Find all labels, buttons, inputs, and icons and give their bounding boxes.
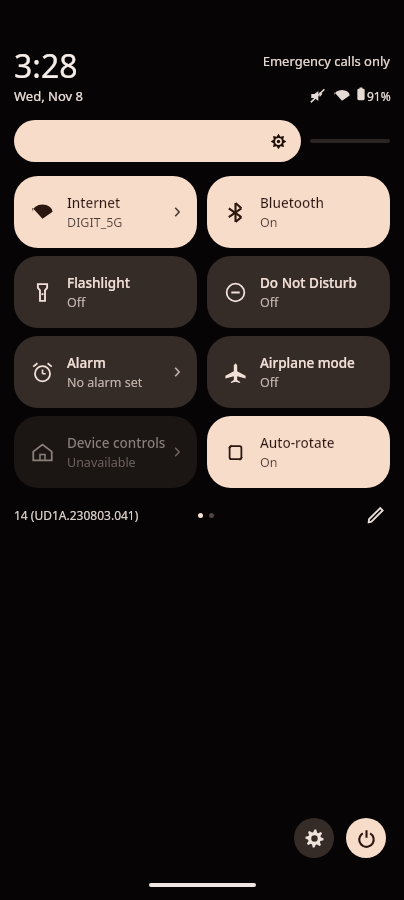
staticText: Airplane mode — [260, 354, 355, 372]
staticText: Internet — [67, 194, 121, 212]
staticText: Off — [260, 294, 279, 311]
button[interactable]: Brightness — [14, 120, 301, 162]
staticText: Auto-rotate — [260, 434, 335, 452]
staticText: Bluetooth — [260, 194, 324, 212]
staticText: DIGIT_5G — [67, 214, 123, 231]
button[interactable]: Alarm — [14, 336, 197, 408]
staticText: Off — [260, 374, 279, 391]
staticText: Emergency calls only — [250, 52, 390, 70]
staticText: Do Not Disturb — [260, 274, 357, 292]
staticText: Off — [67, 294, 86, 311]
button[interactable]: Flashlight — [14, 256, 197, 328]
staticText: 91% — [367, 88, 391, 104]
button[interactable]: Bluetooth — [207, 176, 390, 248]
staticText: Wed, Nov 8 — [14, 87, 83, 105]
button[interactable]: Airplane mode — [207, 336, 390, 408]
staticText: No alarm set — [67, 374, 143, 391]
button[interactable]: Internet — [14, 176, 197, 248]
button[interactable]: Do Not Disturb — [207, 256, 390, 328]
staticText: 14 (UD1A.230803.041) — [14, 507, 139, 523]
staticText: Flashlight — [67, 274, 130, 292]
button[interactable]: Settings — [294, 818, 334, 858]
staticText: 3:28 — [14, 44, 78, 88]
staticText: Device controls — [67, 434, 166, 452]
staticText: Unavailable — [67, 454, 136, 471]
button[interactable]: Power — [346, 818, 386, 858]
button[interactable]: Device controls — [14, 416, 197, 488]
staticText: On — [260, 214, 278, 231]
staticText: Alarm — [67, 354, 106, 372]
button[interactable]: Auto-rotate — [207, 416, 390, 488]
button[interactable]: Edit tiles — [360, 500, 390, 530]
staticText: On — [260, 454, 278, 471]
